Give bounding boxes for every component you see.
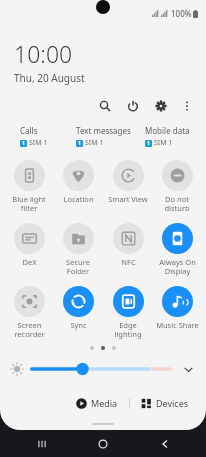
staticText: SIM 1 bbox=[154, 138, 173, 148]
button[interactable]: Search bbox=[94, 95, 116, 117]
button[interactable]: Back bbox=[145, 430, 185, 457]
button[interactable]: NFC bbox=[104, 221, 152, 269]
staticText: Always On Display bbox=[159, 257, 196, 276]
staticText: Devices bbox=[156, 397, 189, 409]
staticText: Calls bbox=[20, 125, 38, 136]
staticText: 100% bbox=[171, 8, 192, 19]
staticText: DeX bbox=[22, 257, 37, 267]
staticText: SIM 1 bbox=[29, 138, 48, 148]
staticText: Location bbox=[63, 194, 94, 204]
staticText: Screen recorder bbox=[14, 320, 45, 339]
button[interactable]: Edge lighting bbox=[104, 284, 152, 341]
staticText: Text messages bbox=[76, 125, 131, 136]
staticText: NFC bbox=[121, 257, 136, 267]
button[interactable]: Blue light filter bbox=[5, 158, 53, 215]
button[interactable]: DeX bbox=[5, 221, 53, 269]
staticText: 1 bbox=[78, 140, 81, 147]
button[interactable]: Sync bbox=[54, 284, 102, 332]
staticText: Edge lighting bbox=[114, 320, 142, 339]
staticText: Smart View bbox=[108, 194, 148, 204]
button[interactable]: Location bbox=[54, 158, 102, 206]
staticText: Media bbox=[91, 397, 118, 409]
button[interactable]: Screen recorder bbox=[5, 284, 53, 341]
button[interactable]: Expand brightness bbox=[180, 361, 196, 377]
staticText: Thu, 20 August bbox=[14, 71, 85, 85]
staticText: 1 bbox=[22, 140, 25, 147]
staticText: SIM 1 bbox=[85, 138, 104, 148]
staticText: Do not disturb bbox=[164, 194, 190, 213]
button[interactable]: Music Share bbox=[153, 284, 201, 332]
staticText: Sync bbox=[70, 320, 87, 330]
button[interactable]: Home bbox=[83, 430, 123, 457]
button[interactable]: More options bbox=[176, 95, 198, 117]
staticText: Music Share bbox=[156, 320, 199, 330]
button[interactable]: Always On Display bbox=[153, 221, 201, 278]
button[interactable]: Smart View bbox=[104, 158, 152, 206]
button[interactable]: Media bbox=[73, 395, 121, 411]
staticText: Blue light filter bbox=[12, 194, 46, 213]
staticText: 1 bbox=[147, 140, 150, 147]
staticText: Secure Folder bbox=[66, 257, 90, 276]
button[interactable]: Secure Folder bbox=[54, 221, 102, 278]
button[interactable]: Recents bbox=[22, 430, 62, 457]
staticText: Mobile data bbox=[145, 125, 190, 136]
button[interactable]: Do not disturb bbox=[153, 158, 201, 215]
staticText: 10:00 bbox=[14, 38, 73, 69]
button[interactable]: Settings bbox=[150, 95, 172, 117]
button[interactable]: Devices bbox=[138, 395, 192, 411]
button[interactable]: Power bbox=[122, 95, 144, 117]
